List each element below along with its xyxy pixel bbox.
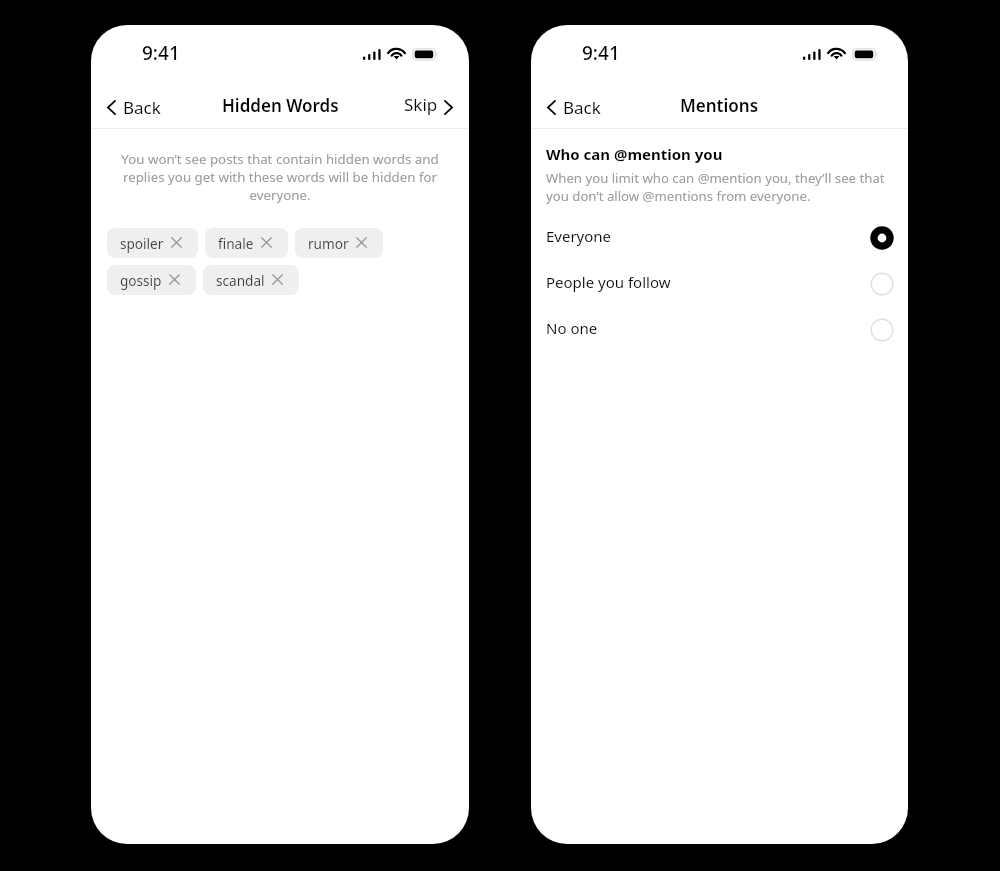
other: Remove rumor <box>356 237 367 248</box>
staticText: People you follow <box>546 272 870 292</box>
staticText: 9:41 <box>142 40 180 66</box>
button[interactable]: Skip <box>394 84 469 130</box>
staticText: gossip <box>120 271 162 290</box>
staticText: You won’t see posts that contain hidden … <box>109 150 451 204</box>
staticText: Mentions <box>680 94 759 117</box>
button[interactable]: spoiler <box>107 228 198 258</box>
staticText: finale <box>218 234 254 253</box>
staticText: scandal <box>216 271 265 290</box>
staticText: 9:41 <box>582 40 620 66</box>
staticText: Back <box>123 96 161 119</box>
staticText: spoiler <box>120 234 164 253</box>
staticText: Skip <box>404 93 438 116</box>
staticText: No one <box>546 318 870 338</box>
staticText: Hidden Words <box>222 94 339 117</box>
button[interactable]: gossip <box>107 265 196 295</box>
button[interactable]: People you follow <box>531 261 908 307</box>
other: Remove gossip <box>169 274 180 285</box>
staticText: Everyone <box>546 226 870 246</box>
other: Remove spoiler <box>171 237 182 248</box>
button[interactable]: Everyone <box>531 215 908 261</box>
staticText: Who can @mention you <box>546 144 723 164</box>
staticText: rumor <box>308 234 349 253</box>
other: Remove finale <box>261 237 272 248</box>
button[interactable]: scandal <box>203 265 299 295</box>
button[interactable]: rumor <box>295 228 383 258</box>
button[interactable]: Back <box>91 84 171 130</box>
staticText: Back <box>563 96 601 119</box>
button[interactable]: finale <box>205 228 288 258</box>
other: Remove scandal <box>272 274 283 285</box>
button[interactable]: Back <box>531 84 611 130</box>
button[interactable]: No one <box>531 307 908 353</box>
staticText: When you limit who can @mention you, the… <box>546 169 885 205</box>
